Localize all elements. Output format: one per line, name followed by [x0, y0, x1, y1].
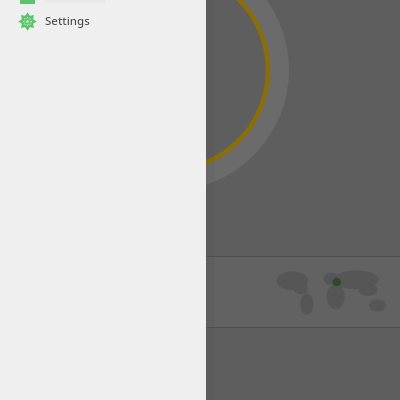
staticText: Settings [45, 13, 90, 29]
button[interactable]: Close navigation drawer [0, 0, 400, 400]
button[interactable]: Settings [0, 6, 206, 36]
button[interactable]: VPN IP [0, 328, 400, 400]
button[interactable] [0, 0, 206, 6]
button[interactable]: Server location map [0, 257, 400, 327]
